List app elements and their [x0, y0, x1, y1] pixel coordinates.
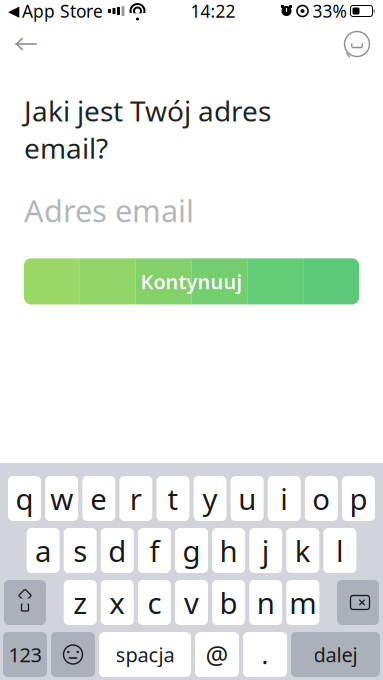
staticText: c	[147, 583, 161, 622]
staticText: Jaki jest Twój adres email?	[24, 92, 271, 166]
staticText: j	[262, 531, 270, 570]
staticText: dalej	[313, 641, 357, 668]
button[interactable]: t	[156, 476, 189, 521]
button[interactable]: Shift	[4, 580, 46, 625]
button[interactable]: x	[101, 580, 134, 625]
staticText: l	[336, 531, 344, 570]
button[interactable]: z	[64, 580, 97, 625]
staticText: spacja	[115, 641, 174, 668]
staticText: d	[108, 531, 126, 570]
button[interactable]: y	[194, 476, 227, 521]
staticText: s	[73, 531, 87, 570]
button[interactable]: Delete	[337, 580, 379, 625]
staticText: g	[182, 531, 200, 570]
staticText: w	[50, 479, 73, 518]
staticText: e	[90, 479, 107, 518]
staticText: Kontynuuj	[140, 268, 242, 295]
staticText: 33%	[312, 0, 346, 22]
button[interactable]: s	[64, 528, 97, 573]
button[interactable]: Adres email	[0, 188, 383, 232]
staticText: t	[167, 479, 178, 518]
staticText: z	[73, 583, 87, 622]
staticText: r	[130, 479, 142, 518]
staticText: n	[257, 583, 275, 622]
button[interactable]: .	[243, 632, 287, 677]
button[interactable]: @	[195, 632, 239, 677]
button[interactable]: h	[212, 528, 245, 573]
button[interactable]: o	[305, 476, 338, 521]
button[interactable]: r	[119, 476, 152, 521]
button[interactable]: l	[323, 528, 356, 573]
staticText: ◀	[8, 3, 19, 19]
button[interactable]: 123	[3, 632, 47, 677]
button[interactable]: d	[101, 528, 134, 573]
button[interactable]: Emoji	[51, 632, 95, 677]
button[interactable]: Back	[0, 22, 52, 66]
button[interactable]: j	[249, 528, 282, 573]
button[interactable]: u	[231, 476, 264, 521]
button[interactable]: spacja	[99, 632, 191, 677]
button[interactable]: i	[268, 476, 301, 521]
staticText: Adres email	[24, 190, 194, 231]
staticText: q	[16, 479, 34, 518]
staticText: f	[149, 531, 159, 570]
button[interactable]: f	[138, 528, 171, 573]
staticText: u	[238, 479, 256, 518]
button[interactable]: c	[138, 580, 171, 625]
button[interactable]: v	[175, 580, 208, 625]
button[interactable]: n	[249, 580, 282, 625]
button[interactable]: Support chat	[331, 22, 383, 66]
button[interactable]: g	[175, 528, 208, 573]
staticText: y	[203, 479, 218, 518]
staticText: m	[289, 583, 316, 622]
button[interactable]: q	[8, 476, 41, 521]
staticText: b	[220, 583, 238, 622]
staticText: i	[280, 479, 288, 518]
staticText: x	[109, 583, 125, 622]
button[interactable]: b	[212, 580, 245, 625]
button[interactable]: e	[82, 476, 115, 521]
staticText: k	[295, 531, 311, 570]
button[interactable]: dalej	[291, 632, 380, 677]
staticText: p	[349, 479, 367, 518]
button[interactable]: a	[27, 528, 60, 573]
staticText: 123	[8, 641, 41, 668]
button[interactable]: p	[342, 476, 375, 521]
staticText: h	[220, 531, 238, 570]
staticText: v	[184, 583, 199, 622]
staticText: a	[35, 531, 51, 570]
staticText: @	[205, 638, 228, 671]
button[interactable]: Kontynuuj	[24, 258, 359, 304]
button[interactable]: k	[286, 528, 319, 573]
staticText: App Store	[22, 0, 103, 22]
staticText: .	[261, 638, 268, 671]
staticText: 14:22	[190, 0, 235, 22]
button[interactable]: m	[286, 580, 319, 625]
staticText: o	[312, 479, 330, 518]
button[interactable]: w	[45, 476, 78, 521]
